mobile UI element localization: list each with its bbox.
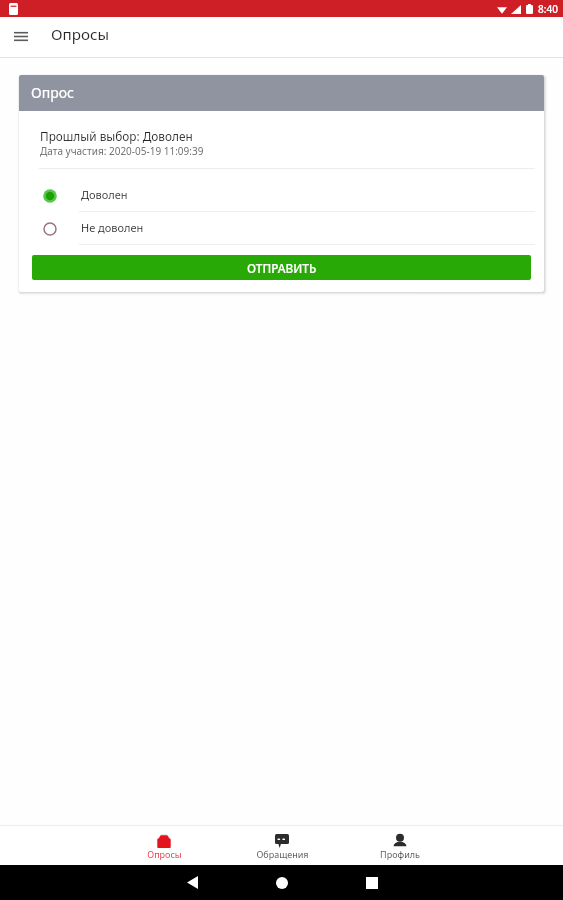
staticText: Опросы (51, 24, 110, 45)
staticText: Прошлый выбор: Доволен (40, 128, 193, 144)
button[interactable]: Back (147, 865, 237, 900)
staticText: Не доволен (81, 220, 144, 235)
button[interactable]: Не доволен (19, 212, 544, 245)
staticText: Опрос (31, 83, 74, 102)
button[interactable]: Open navigation menu (5, 20, 37, 52)
button[interactable]: Home (237, 865, 327, 900)
staticText: Профиль (380, 848, 420, 860)
button[interactable]: Профиль (341, 825, 459, 865)
button[interactable]: Опросы (105, 825, 223, 865)
staticText: Обращения (256, 848, 309, 860)
staticText: Доволен (81, 187, 128, 202)
staticText: Дата участия: 2020-05-19 11:09:39 (40, 144, 204, 158)
button[interactable]: Recent apps (327, 865, 417, 900)
staticText: ОТПРАВИТЬ (247, 260, 317, 276)
staticText: Опросы (147, 848, 182, 860)
staticText: 8:40 (538, 2, 558, 16)
button[interactable]: ОТПРАВИТЬ (32, 255, 531, 280)
button[interactable]: Доволен (19, 179, 544, 212)
button[interactable]: Обращения (223, 825, 341, 865)
